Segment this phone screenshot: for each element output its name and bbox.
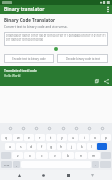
button[interactable]: s xyxy=(16,143,26,150)
button[interactable]: h xyxy=(57,143,66,150)
button[interactable]: d xyxy=(27,143,36,150)
button[interactable]: Toolbar 7 xyxy=(98,124,106,132)
button[interactable]: t xyxy=(46,134,56,141)
button[interactable]: i xyxy=(79,134,89,141)
button[interactable]: ?123 xyxy=(1,161,12,168)
button[interactable]: Toolbar 3 xyxy=(45,124,53,132)
button[interactable]: b xyxy=(62,152,74,159)
staticText: Binary translator xyxy=(4,6,45,13)
button[interactable]: Toolbar 1 xyxy=(19,124,27,132)
button[interactable]: Recents xyxy=(64,171,73,180)
button[interactable]: 01001000 01100101 01101100 01101100 0110… xyxy=(4,32,108,46)
button[interactable]: l xyxy=(87,143,96,150)
staticText: Translated text/code xyxy=(4,69,37,73)
staticText: z xyxy=(17,153,19,158)
staticText: p xyxy=(105,135,108,140)
button[interactable]: r xyxy=(35,134,45,141)
staticText: Convert text to binary code and vice ver… xyxy=(4,25,68,29)
staticText: q xyxy=(5,135,8,140)
button[interactable]: More options xyxy=(103,5,112,14)
staticText: Decode binary code to text xyxy=(66,57,100,61)
staticText: 01001000 01100101 01101100 01101100 0110… xyxy=(6,34,106,41)
button[interactable]: . xyxy=(92,161,99,168)
button[interactable]: Toolbar 6 xyxy=(85,124,93,132)
button[interactable]: j xyxy=(67,143,76,150)
staticText: v xyxy=(54,153,56,158)
button[interactable]: q xyxy=(1,134,12,141)
button[interactable]: x xyxy=(24,152,35,159)
staticText: b xyxy=(67,153,70,158)
staticText: . xyxy=(95,162,96,167)
button[interactable]: g xyxy=(47,143,56,150)
staticText: t xyxy=(50,135,52,140)
button[interactable]: f xyxy=(37,143,46,150)
staticText: u xyxy=(72,135,75,140)
button[interactable]: Toolbar 5 xyxy=(72,124,80,132)
button[interactable]: Toolbar 4 xyxy=(59,124,67,132)
button[interactable]: c xyxy=(36,152,48,159)
staticText: w xyxy=(17,135,20,140)
button[interactable]: n xyxy=(75,152,87,159)
button[interactable]: v xyxy=(49,152,61,159)
button[interactable]: Key xyxy=(97,143,107,150)
staticText: ?123 xyxy=(4,163,10,166)
staticText: n xyxy=(80,153,83,158)
staticText: d xyxy=(30,144,33,149)
staticText: g xyxy=(50,144,53,149)
staticText: j xyxy=(71,144,72,149)
button[interactable]: Toolbar 0 xyxy=(6,124,14,132)
button[interactable]: p xyxy=(101,134,111,141)
button[interactable]: y xyxy=(57,134,67,141)
button[interactable]: u xyxy=(68,134,78,141)
staticText: i xyxy=(84,135,85,140)
button[interactable]: Back xyxy=(15,171,24,180)
staticText: l xyxy=(91,144,92,149)
button[interactable]: Copy xyxy=(94,78,100,84)
button[interactable]: Encode text to binary code xyxy=(4,54,54,63)
staticText: r xyxy=(39,135,41,140)
button[interactable]: Decode binary code to text xyxy=(57,54,108,63)
button[interactable]: w xyxy=(13,134,23,141)
staticText: x xyxy=(29,153,31,158)
button[interactable]: e xyxy=(24,134,34,141)
staticText: m xyxy=(92,153,96,158)
staticText: h xyxy=(60,144,63,149)
button[interactable]: z xyxy=(12,152,23,159)
staticText: Encode text to binary code xyxy=(12,57,46,61)
button[interactable]: Share xyxy=(103,78,109,84)
staticText: Hello World xyxy=(4,74,21,78)
button[interactable]: , xyxy=(13,161,20,168)
button[interactable]: k xyxy=(77,143,86,150)
staticText: c xyxy=(41,153,43,158)
button[interactable]: o xyxy=(90,134,100,141)
staticText: y xyxy=(61,135,63,140)
staticText: k xyxy=(81,144,83,149)
staticText: o xyxy=(94,135,97,140)
staticText: s xyxy=(20,144,22,149)
button[interactable]: Home xyxy=(39,171,48,180)
button[interactable]: Keyboard xyxy=(88,171,97,180)
button[interactable]: a xyxy=(5,143,15,150)
button[interactable]: m xyxy=(88,152,100,159)
staticText: f xyxy=(41,144,43,149)
staticText: Binary Code Translator xyxy=(4,17,56,23)
staticText: , xyxy=(16,162,17,167)
button[interactable]: Toolbar 2 xyxy=(32,124,40,132)
staticText: e xyxy=(28,135,30,140)
staticText: a xyxy=(9,144,11,149)
